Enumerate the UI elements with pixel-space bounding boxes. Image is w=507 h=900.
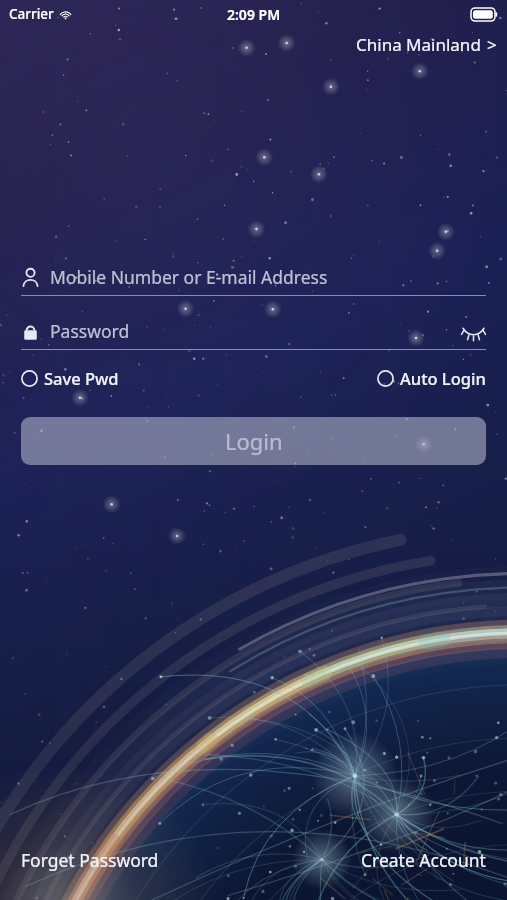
staticText: Auto Login bbox=[400, 367, 486, 389]
staticText: Mobile Number or E-mail Address bbox=[50, 265, 486, 289]
button[interactable]: Save Pwd bbox=[21, 362, 119, 394]
button[interactable]: Show password bbox=[460, 318, 486, 344]
staticText: Carrier bbox=[9, 5, 54, 23]
staticText: China Mainland bbox=[356, 33, 481, 56]
staticText: > bbox=[487, 33, 497, 56]
staticText: Forget Password bbox=[21, 848, 159, 872]
staticText: Password bbox=[50, 319, 460, 343]
button[interactable]: Password bbox=[21, 313, 486, 350]
button[interactable]: Create Account bbox=[349, 840, 507, 880]
button[interactable]: Auto Login bbox=[377, 362, 486, 394]
button[interactable]: Login bbox=[21, 417, 486, 465]
staticText: Login bbox=[225, 426, 283, 456]
button[interactable]: Mobile Number or E-mail Address bbox=[21, 259, 486, 296]
button[interactable]: China Mainland bbox=[342, 28, 507, 65]
staticText: 2:09 PM bbox=[227, 5, 281, 24]
staticText: Create Account bbox=[361, 848, 486, 872]
button[interactable]: Forget Password bbox=[0, 840, 171, 880]
staticText: Save Pwd bbox=[44, 367, 119, 389]
